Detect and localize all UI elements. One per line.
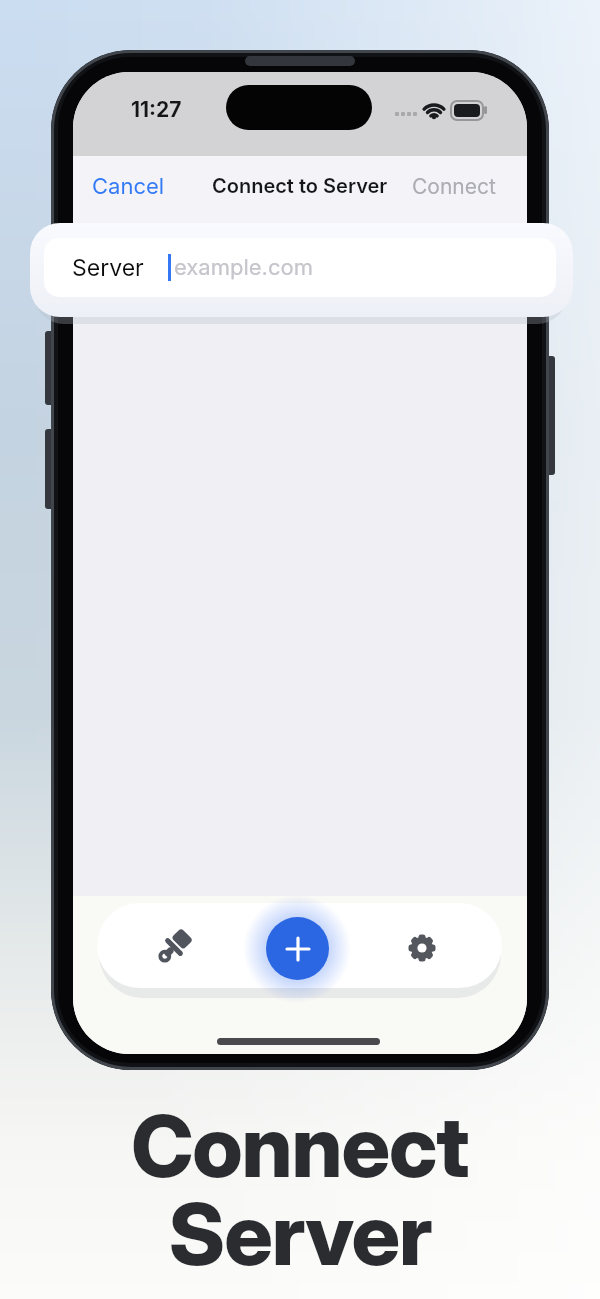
button[interactable]: Server: [44, 238, 556, 297]
staticText: Connect Server: [0, 1095, 600, 1285]
button[interactable]: Cancel: [92, 173, 165, 200]
button[interactable]: [400, 926, 444, 970]
staticText: Cancel: [92, 173, 165, 200]
button[interactable]: [266, 917, 329, 980]
staticText: Server: [72, 254, 144, 282]
staticText: example.com: [174, 254, 313, 281]
staticText: Connect: [412, 174, 496, 199]
staticText: Connect to Server: [212, 174, 388, 198]
button[interactable]: [152, 925, 196, 969]
button[interactable]: Connect: [412, 174, 496, 199]
staticText: 11:27: [131, 97, 182, 122]
